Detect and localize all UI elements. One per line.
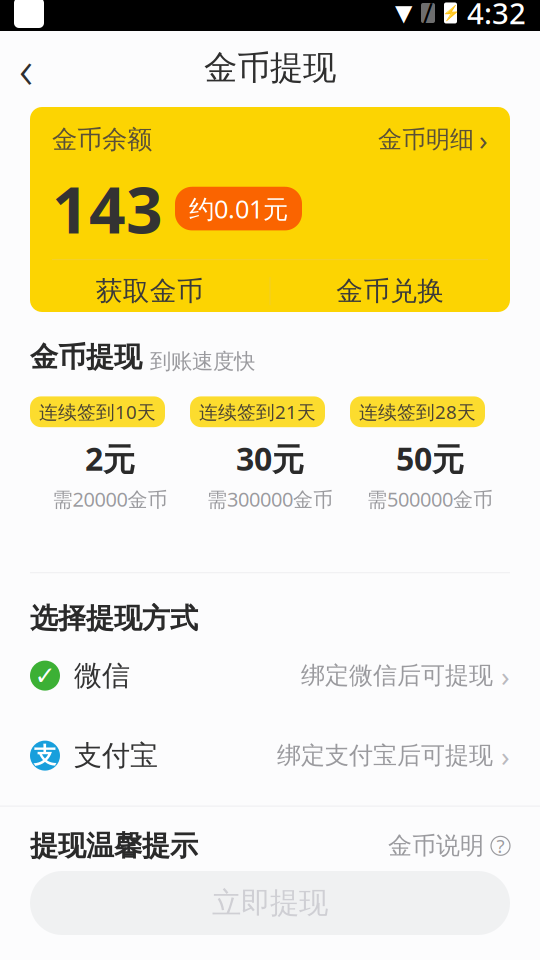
staticText: ‹ xyxy=(19,33,33,103)
button[interactable]: 金币明细 xyxy=(378,121,488,158)
staticText: 金币提现 xyxy=(204,47,336,88)
staticText: 金币余额 xyxy=(52,124,152,155)
staticText: 绑定微信后可提现 xyxy=(301,661,493,690)
staticText: 4:32 xyxy=(467,0,526,32)
staticText: 2元 xyxy=(85,437,135,480)
staticText: 连续签到21天 xyxy=(199,399,316,424)
button[interactable]: 金币说明 xyxy=(388,831,510,861)
staticText: ✓ xyxy=(34,661,55,690)
button[interactable]: 获取金币 xyxy=(30,260,269,322)
staticText: 支 xyxy=(33,742,56,769)
button[interactable]: 金币兑换 xyxy=(270,260,510,322)
staticText: 30元 xyxy=(236,437,304,480)
staticText: 金币说明 xyxy=(388,831,484,861)
staticText: 50元 xyxy=(396,437,464,480)
staticText: › xyxy=(479,121,488,158)
staticText: 143 xyxy=(52,166,163,251)
staticText: › xyxy=(501,737,510,774)
staticText: 金币兑换 xyxy=(336,275,444,307)
button[interactable]: 返回 xyxy=(0,42,52,94)
staticText: ▼ xyxy=(395,0,412,26)
button[interactable]: 立即提现 xyxy=(30,871,510,935)
staticText: 到账速度快 xyxy=(150,348,255,374)
button[interactable]: ✓ xyxy=(0,646,540,706)
staticText: 连续签到28天 xyxy=(359,399,476,424)
staticText: 支付宝 xyxy=(74,738,158,773)
staticText: 提现温馨提示 xyxy=(30,829,198,863)
staticText: ? xyxy=(496,833,504,858)
button[interactable]: 支 xyxy=(0,726,540,786)
staticText: 需500000金币 xyxy=(367,486,493,512)
staticText: 需20000金币 xyxy=(52,486,167,512)
staticText: 需300000金币 xyxy=(207,486,333,512)
staticText: 连续签到10天 xyxy=(39,399,156,424)
staticText: › xyxy=(501,657,510,694)
staticText: 绑定支付宝后可提现 xyxy=(277,741,493,770)
staticText: 选择提现方式 xyxy=(30,601,198,636)
staticText: 立即提现 xyxy=(212,885,328,921)
staticText: ⚡ xyxy=(441,5,459,21)
staticText: / xyxy=(423,0,433,31)
staticText: 获取金币 xyxy=(96,275,204,307)
staticText: 金币提现 xyxy=(30,340,142,374)
staticText: 金币明细 xyxy=(378,125,474,154)
staticText: 约0.01元 xyxy=(189,192,288,225)
staticText: 微信 xyxy=(74,658,130,693)
